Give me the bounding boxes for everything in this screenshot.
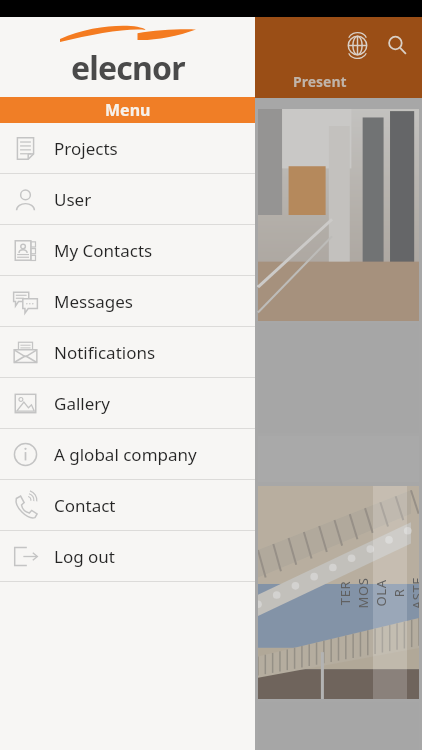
staticText: Present bbox=[293, 72, 347, 91]
button[interactable]: Projects bbox=[0, 123, 255, 173]
button[interactable]: User bbox=[0, 174, 255, 224]
staticText: My Contacts bbox=[54, 239, 153, 262]
button[interactable]: Language bbox=[340, 28, 374, 62]
button[interactable]: TERMOSOLAR ASTE 1A bbox=[258, 486, 419, 699]
staticText: TERMOSOLAR ASTE 1A bbox=[336, 576, 419, 610]
staticText: elecnor bbox=[71, 46, 185, 90]
button[interactable]: Menu bbox=[0, 97, 255, 123]
button[interactable]: A global company bbox=[0, 429, 255, 479]
button[interactable]: Log out bbox=[0, 531, 255, 581]
button[interactable]: Contact bbox=[0, 480, 255, 530]
staticText: User bbox=[54, 188, 92, 211]
button[interactable]: Messages bbox=[0, 276, 255, 326]
staticText: Contact bbox=[54, 494, 116, 517]
button[interactable]: My Contacts bbox=[0, 225, 255, 275]
button[interactable] bbox=[258, 109, 419, 321]
staticText: Notifications bbox=[54, 341, 156, 364]
staticText: Projects bbox=[54, 137, 118, 160]
staticText: Messages bbox=[54, 290, 134, 313]
staticText: Log out bbox=[54, 545, 115, 568]
button[interactable]: Search bbox=[380, 28, 414, 62]
staticText: A global company bbox=[54, 443, 197, 466]
staticText: Menu bbox=[105, 99, 151, 121]
staticText: Gallery bbox=[54, 392, 110, 415]
button[interactable]: Notifications bbox=[0, 327, 255, 377]
button[interactable]: Gallery bbox=[0, 378, 255, 428]
